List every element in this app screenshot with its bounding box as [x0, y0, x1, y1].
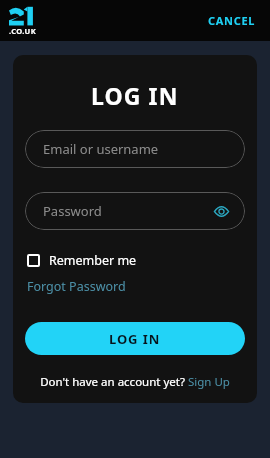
staticText: .CO.UK: [9, 26, 37, 36]
staticText: Remember me: [49, 252, 137, 269]
button[interactable]: Show password: [210, 200, 232, 222]
button[interactable]: LOG IN: [25, 322, 245, 355]
button[interactable]: CANCEL: [204, 7, 260, 34]
button[interactable]: Don't have an account yet? Sign Up: [40, 374, 230, 390]
staticText: Password: [43, 202, 102, 220]
button[interactable]: Email or username: [25, 130, 245, 168]
button[interactable]: 21.co.uk logo: [9, 6, 45, 36]
staticText: Forgot Password: [27, 278, 126, 295]
staticText: CANCEL: [208, 13, 256, 28]
staticText: LOG IN: [109, 330, 161, 348]
staticText: LOG IN: [91, 80, 179, 111]
staticText: Email or username: [43, 140, 159, 158]
button[interactable]: Password: [25, 192, 245, 230]
staticText: Don't have an account yet? Sign Up: [40, 374, 230, 390]
button[interactable]: Remember me: [27, 252, 243, 269]
button[interactable]: Forgot Password: [27, 278, 126, 295]
